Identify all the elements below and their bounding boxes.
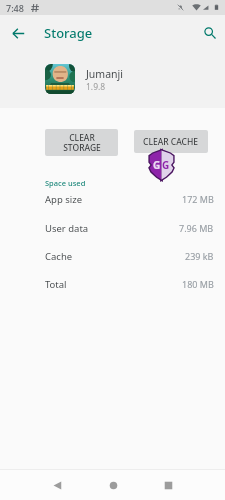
button[interactable]: Back	[42, 470, 72, 500]
button[interactable]: Search	[195, 18, 225, 48]
staticText: Jumanji	[86, 67, 123, 81]
staticText: G	[153, 158, 161, 172]
staticText: 172 MB	[182, 193, 214, 205]
button[interactable]: User data	[0, 216, 225, 240]
staticText: Total	[45, 278, 67, 291]
staticText: User data	[45, 222, 89, 235]
button[interactable]: Home	[98, 470, 128, 500]
staticText: Space used	[45, 178, 86, 188]
staticText: App size	[45, 193, 83, 206]
staticText: 1.9.8	[86, 81, 106, 93]
staticText: 7.96 MB	[179, 222, 214, 234]
staticText: 180 MB	[182, 278, 214, 290]
button[interactable]: Total	[0, 272, 225, 296]
button[interactable]: Cache	[0, 244, 225, 268]
staticText: Cache	[45, 250, 73, 263]
staticText: 239 kB	[185, 250, 214, 262]
staticText: G	[162, 158, 170, 172]
button[interactable]: App size	[0, 187, 225, 211]
button[interactable]: CLEAR CACHE	[134, 130, 208, 153]
staticText: CLEAR STORAGE	[63, 132, 101, 153]
button[interactable]: CLEAR STORAGE	[45, 129, 118, 156]
staticText: Storage	[44, 24, 93, 42]
staticText: 7:48	[6, 2, 24, 14]
staticText: CLEAR CACHE	[143, 136, 199, 148]
button[interactable]: Recents	[153, 470, 183, 500]
button[interactable]: Back	[3, 18, 33, 48]
